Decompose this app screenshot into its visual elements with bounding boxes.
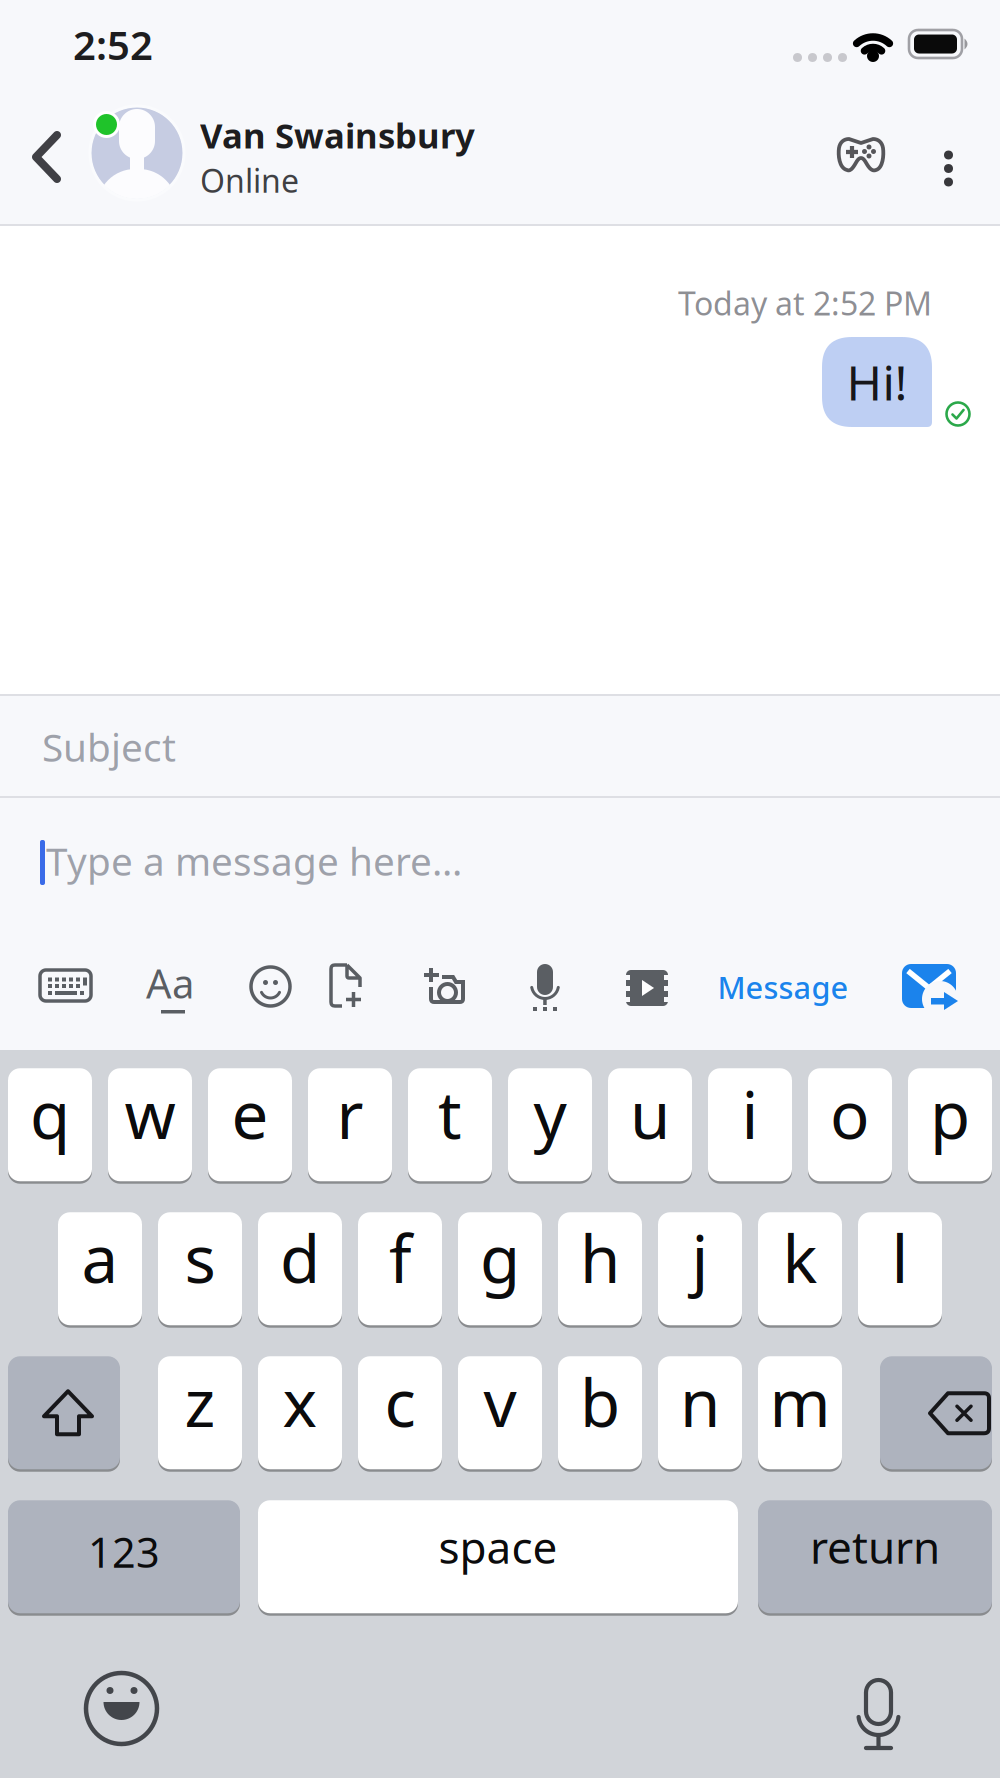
staticText: p (930, 1070, 970, 1157)
staticText: g (480, 1214, 520, 1301)
button[interactable]: h (558, 1211, 642, 1326)
button[interactable]: u (608, 1067, 692, 1182)
button[interactable]: k (758, 1211, 842, 1326)
button[interactable]: Hi! (822, 337, 932, 427)
staticText: a (81, 1214, 118, 1301)
staticText: m (769, 1358, 830, 1445)
staticText: k (782, 1214, 817, 1301)
staticText: space (438, 1517, 557, 1576)
staticText: return (810, 1517, 940, 1576)
staticText: i (741, 1070, 758, 1157)
button[interactable]: v (458, 1355, 542, 1470)
staticText: w (124, 1070, 175, 1157)
button[interactable]: x (258, 1355, 342, 1470)
staticText: Today at 2:52 PM (678, 282, 932, 324)
button[interactable]: l (858, 1211, 942, 1326)
button[interactable] (527, 964, 563, 1012)
staticText: y (533, 1070, 566, 1157)
button[interactable] (854, 1680, 904, 1752)
button[interactable]: s (158, 1211, 242, 1326)
button[interactable]: return (758, 1499, 992, 1614)
staticText: q (30, 1070, 70, 1157)
staticText: d (280, 1214, 320, 1301)
button[interactable] (880, 1355, 992, 1470)
staticText: Van Swainsbury (200, 112, 475, 158)
staticText: s (184, 1214, 215, 1301)
staticText: b (580, 1358, 620, 1445)
staticText: j (691, 1214, 708, 1301)
button[interactable] (420, 960, 464, 1004)
button[interactable] (898, 960, 960, 1016)
button[interactable]: Subject (42, 721, 176, 772)
button[interactable]: m (758, 1355, 842, 1470)
button[interactable] (626, 970, 668, 1006)
button[interactable] (33, 133, 61, 181)
button[interactable]: a (58, 1211, 142, 1326)
button[interactable] (92, 108, 184, 200)
staticText: r (336, 1070, 363, 1157)
button[interactable]: space (258, 1499, 738, 1614)
button[interactable]: Aa (140, 956, 200, 1010)
button[interactable] (8, 1355, 120, 1470)
staticText: e (231, 1070, 268, 1157)
staticText: h (580, 1214, 620, 1301)
button[interactable]: c (358, 1355, 442, 1470)
button[interactable]: Message (717, 967, 848, 1007)
staticText: 123 (88, 1524, 160, 1579)
button[interactable] (944, 137, 953, 173)
button[interactable]: w (108, 1067, 192, 1182)
button[interactable]: 123 (8, 1499, 240, 1614)
button[interactable]: f (358, 1211, 442, 1326)
button[interactable]: d (258, 1211, 342, 1326)
button[interactable]: q (8, 1067, 92, 1182)
button[interactable]: j (658, 1211, 742, 1326)
button[interactable] (86, 1673, 157, 1744)
staticText: l (891, 1214, 908, 1301)
button[interactable]: i (708, 1067, 792, 1182)
button[interactable]: b (558, 1355, 642, 1470)
button[interactable] (838, 137, 884, 173)
staticText: 2:52 (73, 18, 153, 71)
staticText: o (830, 1070, 870, 1157)
staticText: Online (200, 159, 299, 201)
staticText: Subject (42, 721, 176, 772)
button[interactable]: g (458, 1211, 542, 1326)
staticText: n (680, 1358, 720, 1445)
button[interactable]: n (658, 1355, 742, 1470)
button[interactable]: r (308, 1067, 392, 1182)
staticText: u (630, 1070, 670, 1157)
button[interactable]: Type a message here... (46, 835, 462, 886)
staticText: f (389, 1214, 411, 1301)
button[interactable]: o (808, 1067, 892, 1182)
staticText: c (384, 1358, 415, 1445)
button[interactable] (251, 967, 290, 1006)
staticText: t (438, 1070, 462, 1157)
staticText: Hi! (846, 350, 907, 414)
button[interactable]: e (208, 1067, 292, 1182)
button[interactable]: z (158, 1355, 242, 1470)
button[interactable]: t (408, 1067, 492, 1182)
button[interactable] (329, 963, 363, 1009)
button[interactable]: p (908, 1067, 992, 1182)
staticText: z (184, 1358, 215, 1445)
button[interactable] (40, 970, 91, 1001)
staticText: x (282, 1358, 317, 1445)
staticText: Aa (146, 956, 194, 1009)
staticText: v (483, 1358, 516, 1445)
button[interactable]: y (508, 1067, 592, 1182)
staticText: Type a message here... (46, 835, 462, 886)
staticText: Message (717, 967, 848, 1007)
